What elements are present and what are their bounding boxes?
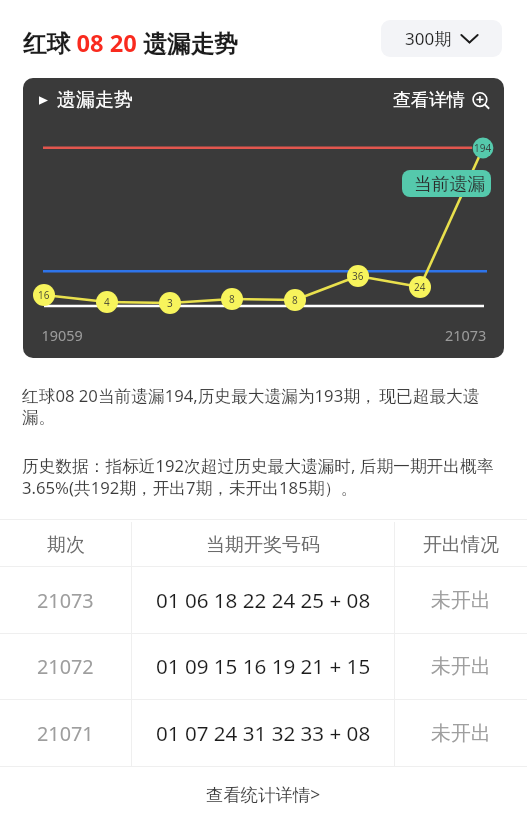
- staticText: 未开出: [431, 654, 491, 679]
- staticText: 当前遗漏: [414, 173, 486, 195]
- button[interactable]: 21073: [0, 567, 527, 633]
- button[interactable]: 21071: [0, 700, 527, 766]
- staticText: 21071: [37, 720, 94, 747]
- staticText: 01 06 18 22 24 25 + 08: [156, 586, 371, 614]
- staticText: 未开出: [431, 588, 491, 613]
- staticText: 期次: [47, 533, 85, 557]
- staticText: 当期开奖号码: [206, 533, 320, 557]
- staticText: 开出情况: [423, 533, 499, 557]
- staticText: 21073: [37, 587, 94, 614]
- button[interactable]: 查看详情: [393, 89, 490, 112]
- staticText: 01 07 24 31 32 33 + 08: [156, 719, 371, 747]
- staticText: 21072: [37, 653, 94, 680]
- staticText: 红球08 20当前遗漏194,历史最大遗漏为193期， 现已超最大遗 漏。: [22, 384, 480, 428]
- button[interactable]: 21072: [0, 633, 527, 699]
- staticText: 300期: [405, 27, 452, 50]
- staticText: 未开出: [431, 721, 491, 746]
- staticText: 红球 08 20 遗漏走势: [23, 27, 238, 59]
- staticText: 遗漏走势: [57, 88, 133, 112]
- staticText: 查看详情: [393, 89, 465, 112]
- button[interactable]: 查看统计详情>: [0, 775, 527, 813]
- other: Zoom in: [472, 92, 490, 110]
- staticText: 查看统计详情>: [206, 782, 321, 806]
- button[interactable]: 300期: [381, 20, 502, 57]
- staticText: 01 09 15 16 19 21 + 15: [156, 652, 371, 680]
- staticText: 历史数据：指标近192次超过历史最大遗漏时, 后期一期开出概率 3.65%(共1…: [22, 454, 494, 499]
